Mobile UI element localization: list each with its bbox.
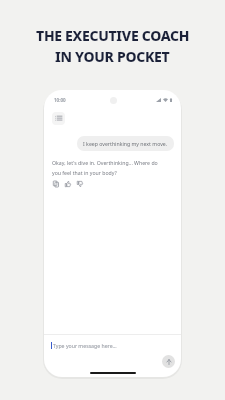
button[interactable]: Dislike (76, 180, 84, 188)
button[interactable]: Copy (52, 180, 60, 188)
staticText: IN YOUR POCKET (55, 47, 170, 66)
staticText: I keep overthinking my next move. (83, 140, 168, 147)
button[interactable]: Type your message here... (51, 342, 158, 349)
staticText: 10:00 (54, 97, 66, 103)
button[interactable]: I keep overthinking my next move. (77, 136, 174, 151)
staticText: THE EXECUTIVE COACH (36, 26, 190, 45)
button[interactable]: Like (64, 180, 72, 188)
button[interactable]: Send (162, 355, 175, 368)
button[interactable]: Menu (52, 112, 65, 125)
staticText: you feel that in your body? (52, 169, 117, 176)
staticText: Type your message here... (53, 342, 117, 349)
staticText: Okay, let's dive in. Overthinking... Whe… (52, 159, 158, 166)
